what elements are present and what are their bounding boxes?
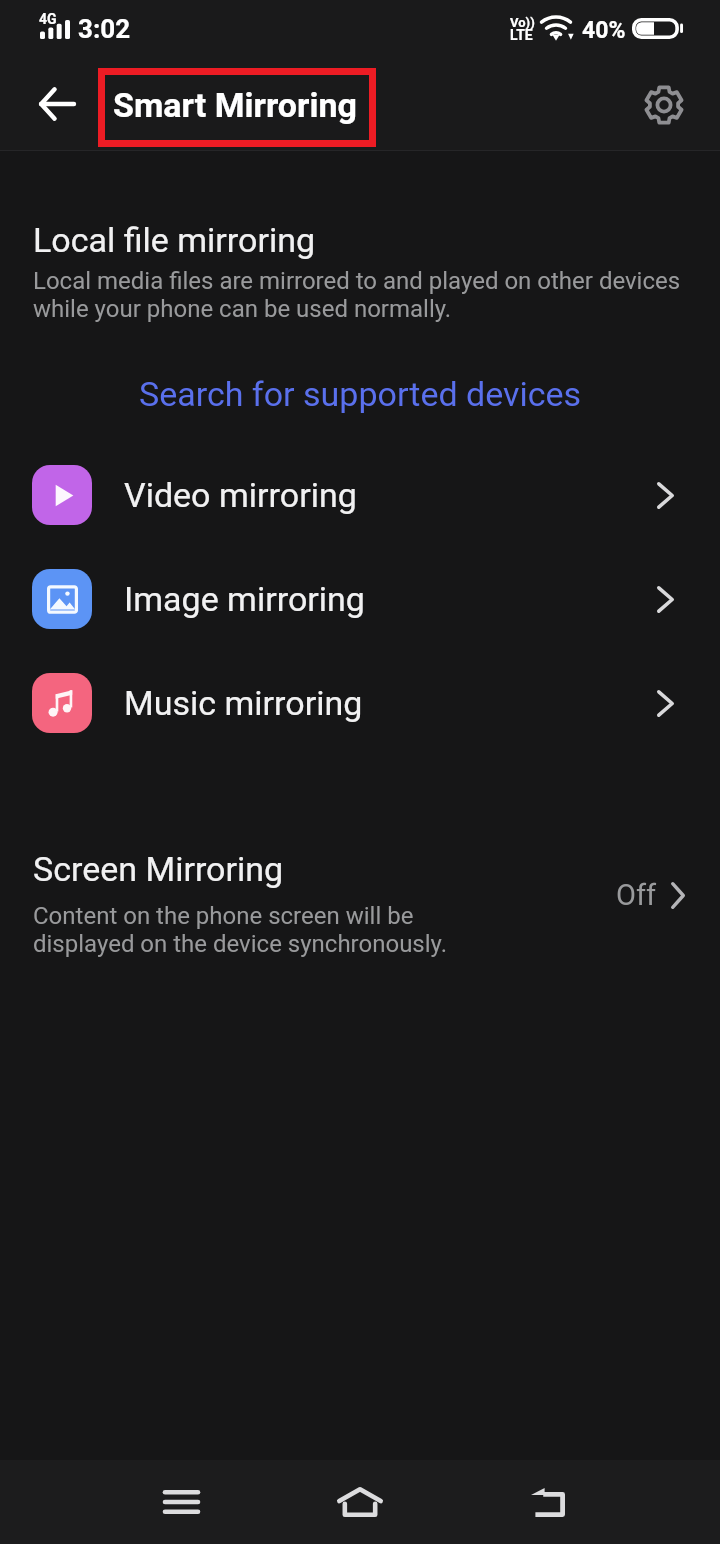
staticText: Image mirroring xyxy=(124,579,365,619)
staticText: Video mirroring xyxy=(124,475,357,515)
staticText: Local media files are mirrored to and pl… xyxy=(33,267,681,323)
button[interactable]: Screen Mirroring xyxy=(0,830,720,972)
staticText: 4G xyxy=(39,11,57,27)
staticText: Off xyxy=(616,878,657,912)
button[interactable]: Home xyxy=(319,1461,401,1543)
button[interactable]: Settings xyxy=(628,69,700,141)
staticText: Search for supported devices xyxy=(139,374,582,414)
button[interactable]: Back xyxy=(20,68,92,140)
button[interactable]: Image mirroring xyxy=(0,547,720,651)
staticText: 40% xyxy=(582,17,626,44)
staticText: Smart Mirroring xyxy=(113,85,357,125)
button[interactable]: Recent apps xyxy=(140,1461,222,1543)
staticText: 3:02 xyxy=(78,14,131,44)
staticText: Vo)) xyxy=(510,15,535,30)
button[interactable]: Back xyxy=(507,1461,589,1543)
button[interactable]: Music mirroring xyxy=(0,651,720,755)
staticText: Music mirroring xyxy=(124,683,363,723)
staticText: Local file mirroring xyxy=(33,220,316,260)
staticText: LTE xyxy=(510,27,533,43)
button[interactable]: Video mirroring xyxy=(0,443,720,547)
staticText: Screen Mirroring xyxy=(33,849,284,889)
staticText: Content on the phone screen will be disp… xyxy=(33,902,448,958)
button[interactable]: Search for supported devices xyxy=(0,356,720,432)
